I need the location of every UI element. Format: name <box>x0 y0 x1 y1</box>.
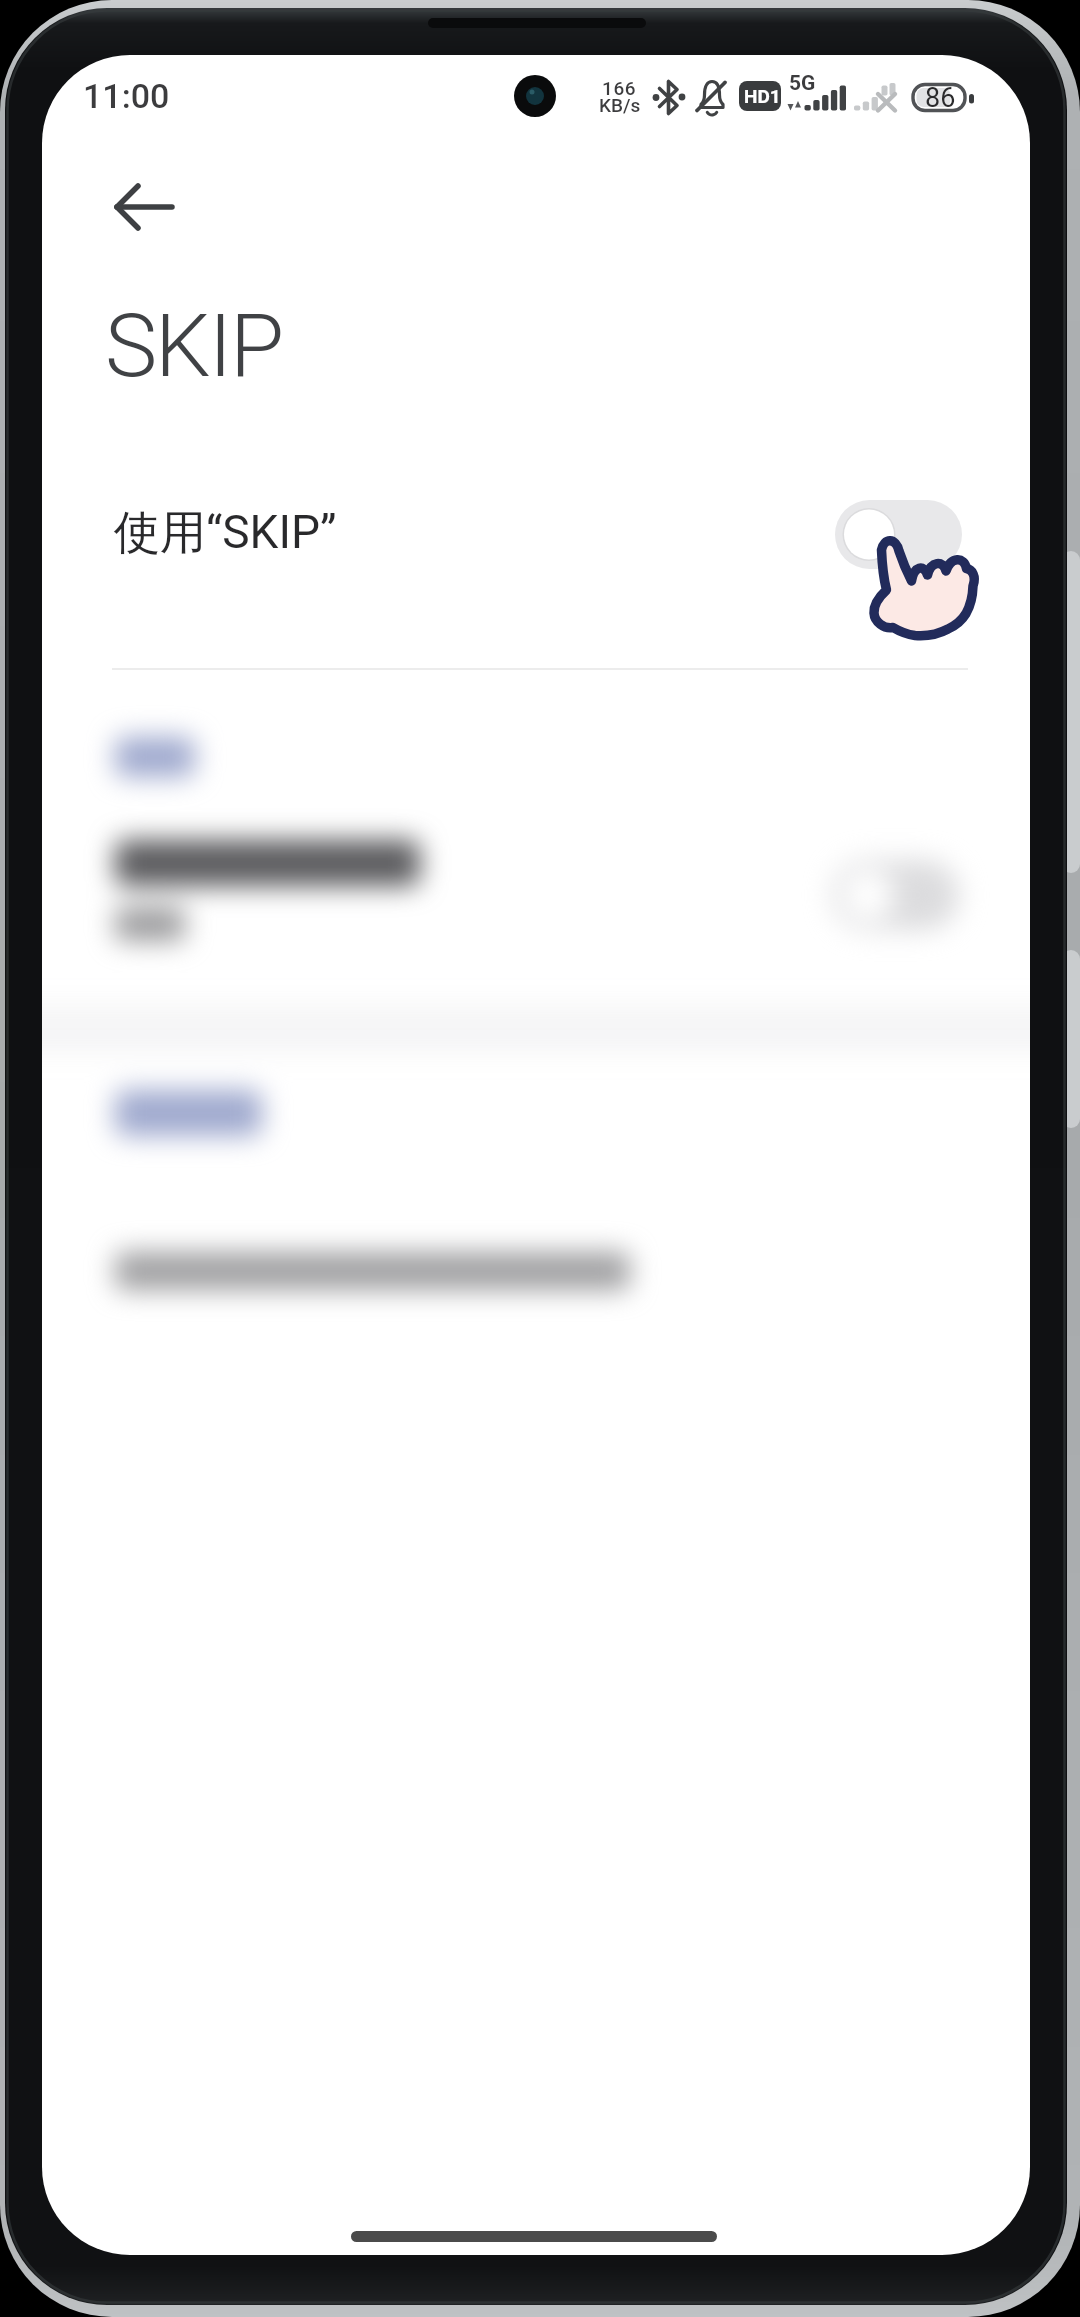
staticText: 86 <box>925 82 956 114</box>
staticText: 5G <box>789 71 816 96</box>
button[interactable] <box>96 167 192 247</box>
staticText: 11:00 <box>83 76 170 116</box>
button[interactable] <box>42 455 1030 635</box>
button[interactable] <box>42 820 1030 960</box>
staticText: KB/s <box>599 94 641 116</box>
staticText: HD1 <box>744 85 781 107</box>
staticText: SKIP <box>105 294 283 397</box>
button[interactable] <box>835 500 962 569</box>
staticText: 使用“SKIP” <box>114 504 337 562</box>
staticText: 166 <box>602 77 637 99</box>
